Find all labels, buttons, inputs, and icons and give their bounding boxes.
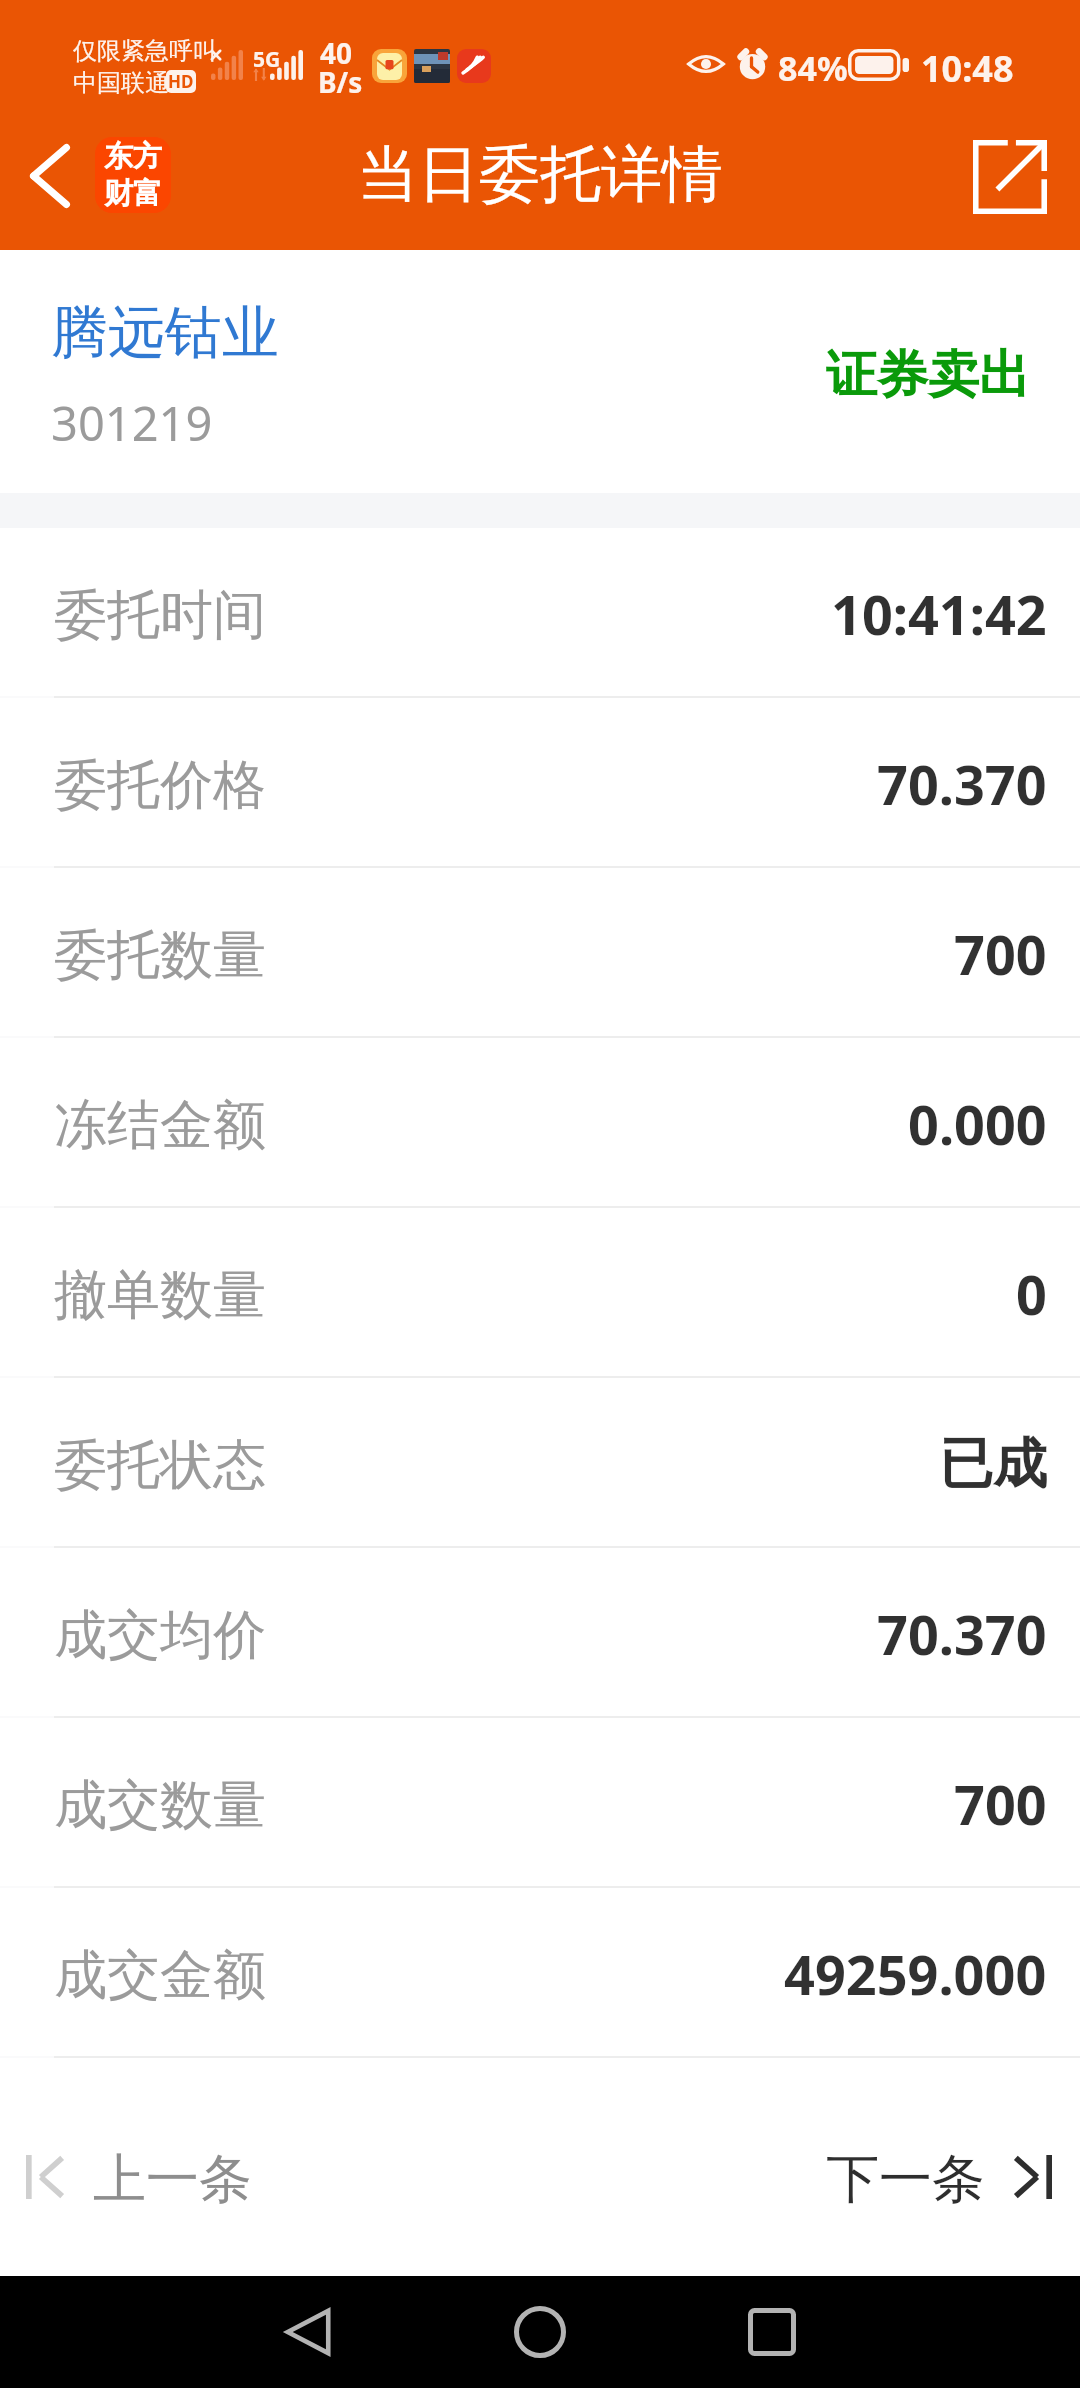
staticText: 委托价格 xyxy=(54,752,266,819)
button[interactable]: Back xyxy=(192,2276,424,2388)
staticText: HD xyxy=(168,70,194,93)
button[interactable]: 成交金额 xyxy=(0,1888,1080,2056)
staticText: 委托数量 xyxy=(54,922,266,989)
button[interactable]: 撤单数量 xyxy=(0,1208,1080,1376)
staticText: B/s xyxy=(318,63,363,101)
button[interactable]: 委托状态 xyxy=(0,1378,1080,1546)
staticText: 10:48 xyxy=(921,44,1014,93)
staticText: 东方 xyxy=(104,138,162,175)
staticText: 49259.000 xyxy=(784,1937,1047,2011)
button[interactable]: 腾远钴业 xyxy=(0,250,1080,493)
staticText: 中国联通 xyxy=(73,68,169,98)
staticText: 10:41:42 xyxy=(831,577,1047,651)
staticText: 成交金额 xyxy=(54,1942,266,2009)
button[interactable]: 下一条 xyxy=(796,2119,1080,2234)
staticText: 700 xyxy=(954,1767,1047,1841)
button[interactable]: 上一条 xyxy=(0,2119,282,2234)
button[interactable]: Recents xyxy=(656,2276,888,2388)
staticText: 委托时间 xyxy=(54,582,266,649)
staticText: 0.000 xyxy=(908,1087,1047,1161)
staticText: 已成 xyxy=(939,1430,1047,1498)
button[interactable]: 委托价格 xyxy=(0,698,1080,866)
staticText: 腾远钴业 xyxy=(51,297,279,369)
button[interactable]: Home xyxy=(424,2276,656,2388)
staticText: 委托状态 xyxy=(54,1432,266,1499)
button[interactable]: 冻结金额 xyxy=(0,1038,1080,1206)
staticText: 冻结金额 xyxy=(54,1092,266,1159)
staticText: 财富 xyxy=(104,175,162,212)
button[interactable]: 委托时间 xyxy=(0,528,1080,696)
staticText: 下一条 xyxy=(826,2146,985,2213)
staticText: 84% xyxy=(778,45,848,91)
button[interactable]: Back xyxy=(0,106,189,246)
staticText: 上一条 xyxy=(93,2146,252,2213)
staticText: 撤单数量 xyxy=(54,1262,266,1329)
staticText: 40 xyxy=(320,34,353,72)
staticText: 700 xyxy=(954,917,1047,991)
button[interactable]: 委托数量 xyxy=(0,868,1080,1036)
staticText: 70.370 xyxy=(877,747,1047,821)
button[interactable]: 成交数量 xyxy=(0,1718,1080,1886)
staticText: 当日委托详情 xyxy=(357,136,723,213)
staticText: 5G xyxy=(253,45,281,74)
staticText: 仅限紧急呼叫 xyxy=(73,36,217,66)
staticText: 成交均价 xyxy=(54,1602,266,1669)
staticText: 70.370 xyxy=(877,1597,1047,1671)
staticText: 301219 xyxy=(51,391,213,455)
staticText: 成交数量 xyxy=(54,1772,266,1839)
button[interactable]: 成交均价 xyxy=(0,1548,1080,1716)
staticText: 0 xyxy=(1016,1257,1047,1331)
button[interactable]: Share xyxy=(937,107,1080,241)
staticText: 证券卖出 xyxy=(826,343,1030,407)
